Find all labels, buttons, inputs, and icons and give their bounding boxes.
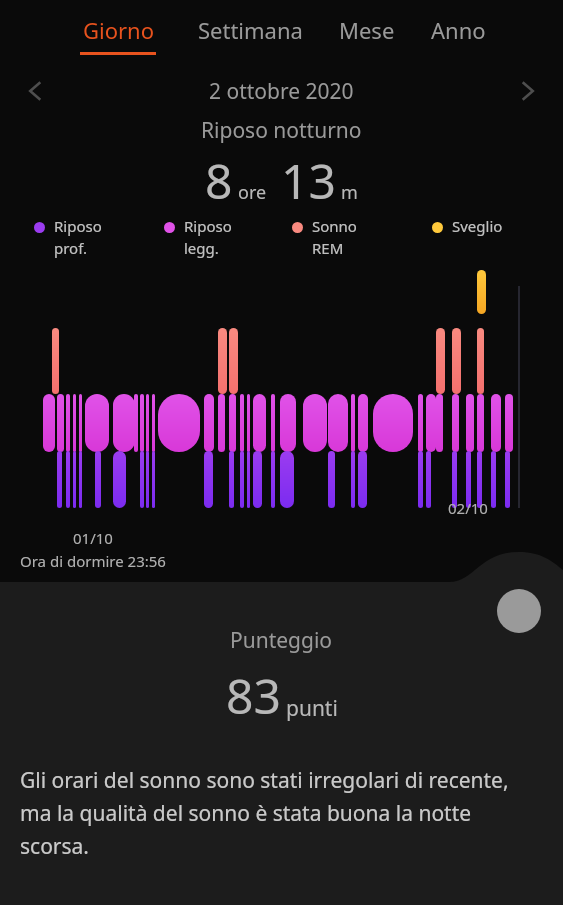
staticText: Riposo: [54, 216, 102, 236]
staticText: Sonno: [312, 216, 357, 236]
staticText: m: [341, 180, 358, 205]
button[interactable]: Espandi dettagli: [497, 589, 541, 633]
button[interactable]: Riposo: [164, 216, 232, 258]
staticText: prof.: [54, 238, 88, 258]
button[interactable]: Riposo: [34, 216, 102, 258]
staticText: Anno: [431, 15, 486, 45]
button[interactable]: Giorno precedente: [18, 73, 54, 109]
button[interactable]: Giorno successivo: [509, 73, 545, 109]
staticText: legg.: [184, 238, 219, 258]
button[interactable]: Anno: [427, 20, 490, 50]
staticText: Giorno: [83, 15, 154, 45]
button[interactable]: Sveglio: [432, 216, 503, 236]
staticText: ore: [238, 180, 267, 205]
staticText: Settimana: [198, 15, 303, 45]
button[interactable]: Mese: [335, 20, 399, 50]
staticText: Riposo notturno: [201, 116, 362, 145]
staticText: Mese: [339, 15, 395, 45]
staticText: 13: [281, 148, 336, 210]
staticText: Punteggio: [230, 626, 333, 655]
staticText: Ora di dormire 23:56: [20, 551, 166, 568]
staticText: Gli orari del sonno sono stati irregolar…: [20, 766, 543, 860]
staticText: 2 ottobre 2020: [209, 77, 354, 106]
staticText: 8: [205, 148, 233, 210]
button[interactable]: Giorno: [76, 15, 160, 55]
button[interactable]: Sonno: [292, 216, 357, 258]
staticText: punti: [286, 694, 338, 723]
staticText: REM: [312, 238, 344, 258]
staticText: Riposo: [184, 216, 232, 236]
staticText: 02/10: [448, 498, 488, 514]
button[interactable]: Settimana: [194, 20, 307, 50]
staticText: 83: [226, 663, 281, 728]
staticText: 01/10: [73, 528, 113, 548]
staticText: Sveglio: [452, 216, 503, 236]
